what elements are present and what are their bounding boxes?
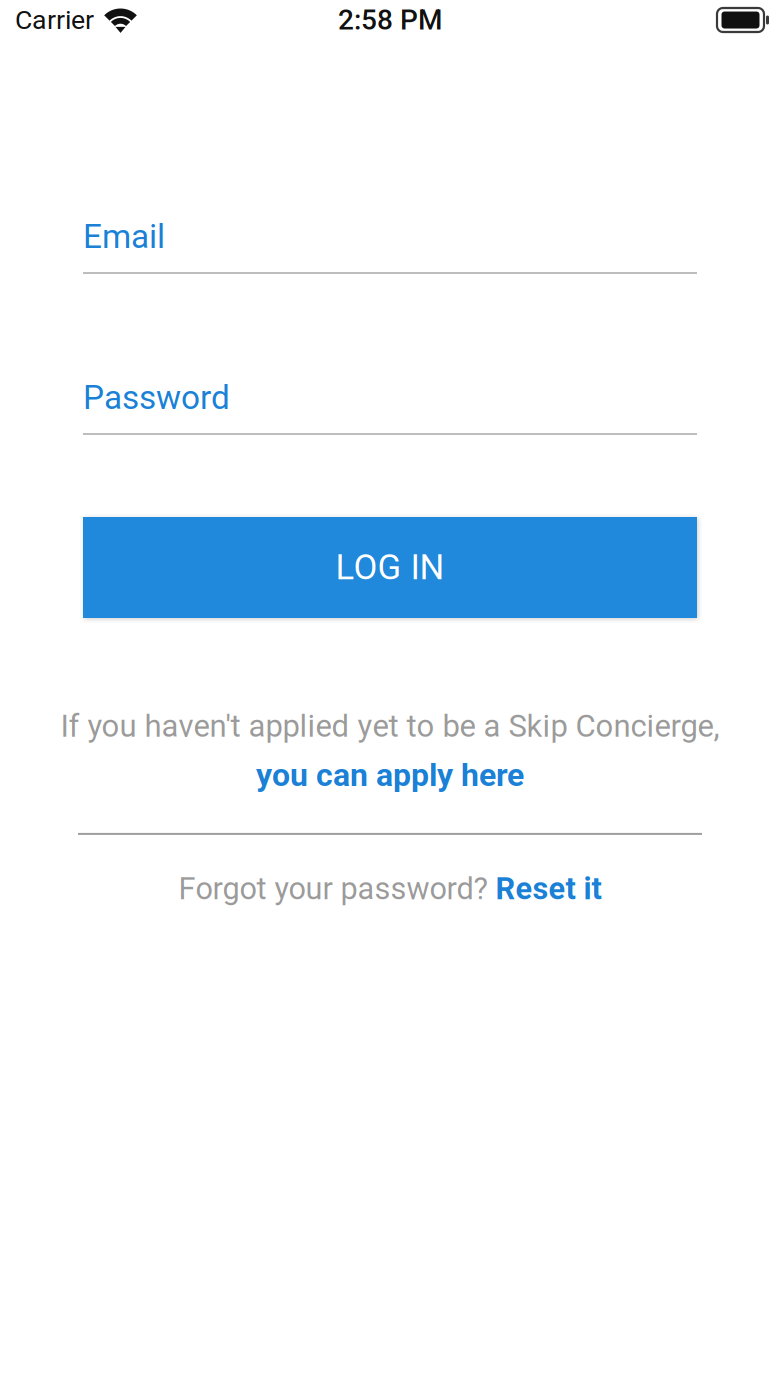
button[interactable]: LOG IN — [83, 517, 697, 618]
button[interactable]: you can apply here — [256, 756, 524, 794]
staticText: If you haven't applied yet to be a Skip … — [60, 708, 719, 744]
staticText: Password — [83, 378, 230, 417]
button[interactable]: Forgot your password? — [178, 871, 601, 907]
button[interactable]: Email — [83, 217, 697, 274]
staticText: Email — [83, 217, 165, 256]
button[interactable]: Password — [83, 378, 697, 435]
staticText: LOG IN — [335, 547, 444, 588]
staticText: Reset it — [495, 871, 601, 907]
staticText: Carrier — [15, 4, 94, 36]
staticText: Forgot your password? — [178, 871, 487, 907]
staticText: 2:58 PM — [338, 4, 442, 36]
staticText: you can apply here — [256, 756, 524, 794]
